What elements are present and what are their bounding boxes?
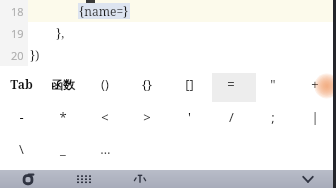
staticText: {}	[142, 75, 152, 93]
button[interactable]: "	[252, 66, 294, 102]
button[interactable]: |	[294, 102, 336, 132]
staticText: ()	[101, 75, 109, 93]
staticText: -	[19, 108, 24, 126]
staticText: "	[270, 75, 276, 93]
button[interactable]: '	[168, 102, 210, 132]
staticText: \	[19, 140, 24, 158]
staticText: 20	[11, 48, 24, 63]
staticText: '	[188, 108, 191, 126]
staticText: *	[59, 108, 67, 126]
button[interactable]: 函数	[42, 66, 84, 102]
button[interactable]: …	[84, 132, 126, 166]
staticText: …	[100, 140, 111, 158]
staticText: })	[30, 47, 40, 63]
button[interactable]: -	[0, 102, 42, 132]
staticText: |	[311, 108, 319, 126]
staticText: /	[229, 108, 234, 126]
button[interactable]: /	[210, 102, 252, 132]
button[interactable]: *	[42, 102, 84, 132]
staticText: []	[185, 75, 194, 93]
button[interactable]: Hide keyboard	[280, 170, 336, 188]
button[interactable]: ;	[252, 102, 294, 132]
staticText: },	[56, 25, 65, 41]
button[interactable]: ()	[84, 66, 126, 102]
button[interactable]: >	[126, 102, 168, 132]
button[interactable]: {}	[126, 66, 168, 102]
staticText: 19	[11, 26, 24, 41]
button[interactable]: +	[294, 66, 336, 102]
staticText: =	[227, 75, 235, 93]
button[interactable]: Keyboard layout	[56, 170, 112, 188]
staticText: 函数	[51, 77, 75, 92]
staticText: <	[101, 108, 109, 126]
staticText: Tab	[10, 76, 33, 92]
staticText: +	[311, 75, 319, 93]
button[interactable]: []	[168, 66, 210, 102]
button[interactable]: Voice input	[0, 170, 56, 188]
staticText: 18	[11, 4, 24, 19]
button[interactable]: Text tools	[112, 170, 168, 188]
staticText: {name=}	[79, 3, 129, 19]
staticText: _	[60, 140, 66, 158]
button[interactable]: <	[84, 102, 126, 132]
button[interactable]: \	[0, 132, 42, 166]
button[interactable]: Tab	[0, 66, 42, 102]
button[interactable]: _	[42, 132, 84, 166]
staticText: ;	[271, 108, 275, 126]
staticText: >	[143, 108, 151, 126]
button[interactable]: =	[210, 66, 252, 102]
